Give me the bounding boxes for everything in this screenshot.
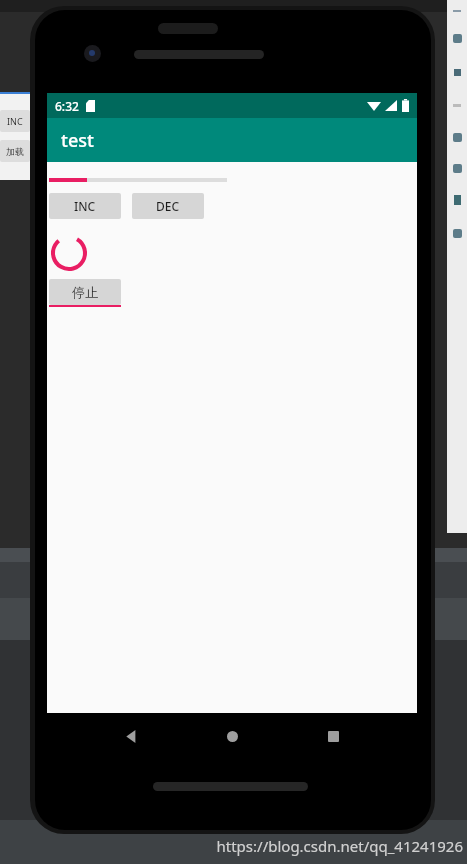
button[interactable]: DEC	[132, 193, 204, 219]
staticText: test	[61, 128, 94, 153]
button[interactable]: Back	[114, 719, 148, 753]
button[interactable]: Recent apps	[316, 719, 350, 753]
staticText: 加载	[6, 146, 24, 157]
staticText: DEC	[156, 198, 180, 214]
button[interactable]: 加载	[0, 140, 30, 162]
button[interactable]: Home	[215, 719, 249, 753]
button[interactable]: INC	[0, 110, 30, 132]
staticText: INC	[74, 198, 96, 214]
button[interactable]: 停止	[49, 279, 121, 307]
button[interactable]: INC	[49, 193, 121, 219]
staticText: 停止	[72, 284, 98, 300]
staticText: INC	[7, 115, 23, 127]
staticText: 6:32	[55, 98, 79, 114]
staticText: https://blog.csdn.net/qq_41241926	[216, 836, 463, 856]
